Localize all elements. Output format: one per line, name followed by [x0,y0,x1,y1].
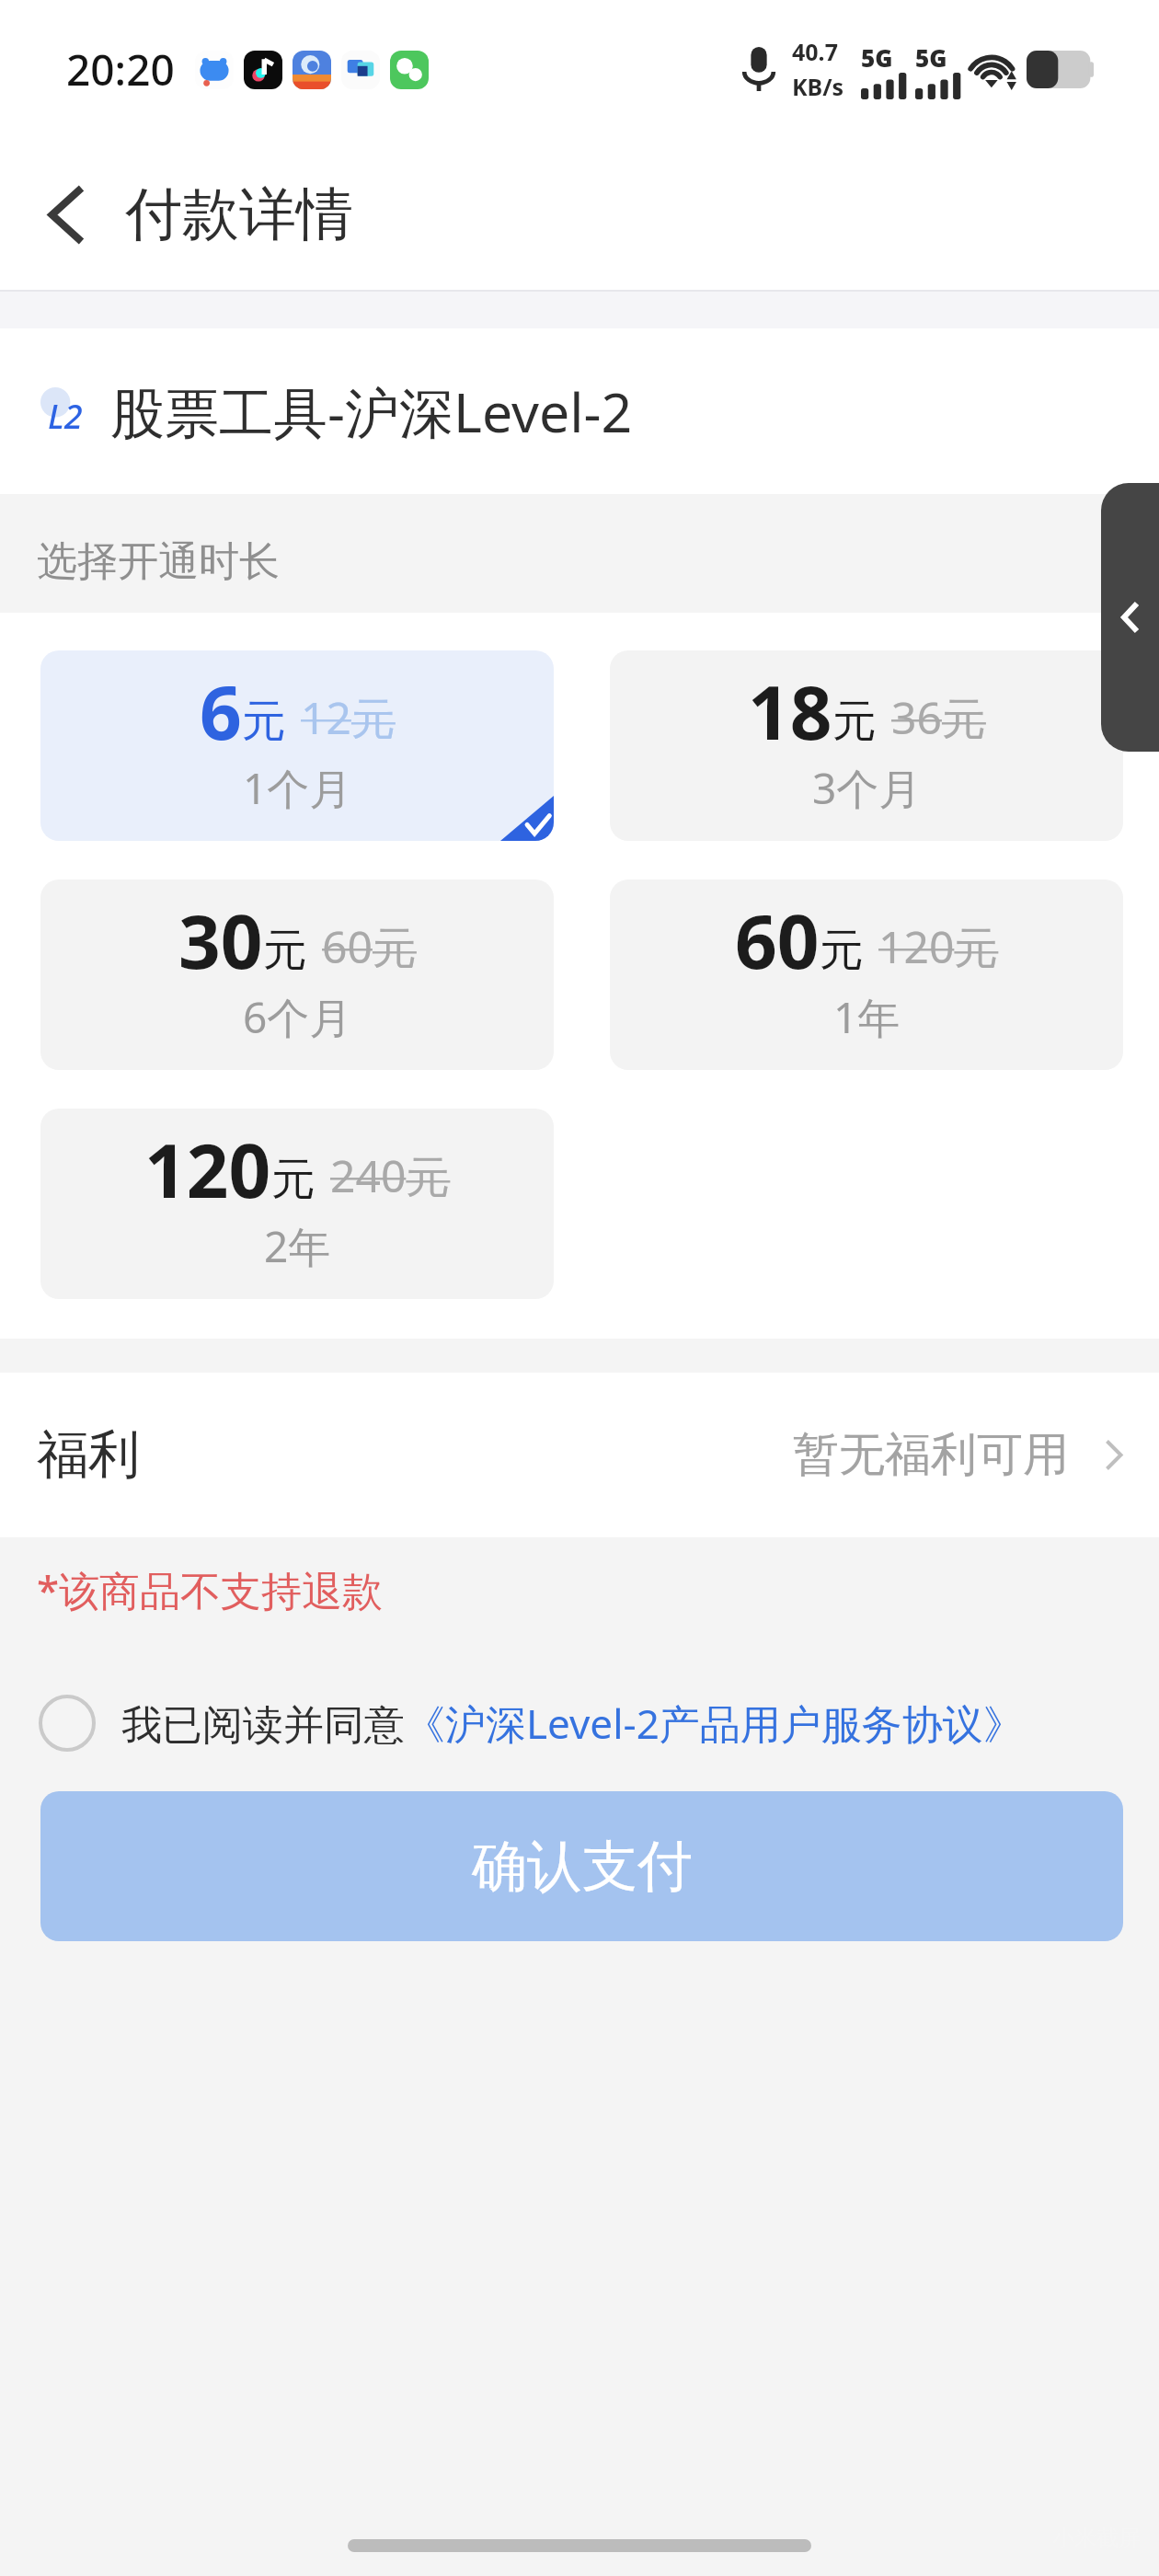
staticText: 20:20 [66,40,175,98]
staticText: 1个月 [243,759,352,817]
staticText: 元 [271,1152,316,1207]
button[interactable]: 120 [40,1109,554,1299]
staticText: KB/s [792,71,844,102]
button[interactable]: Back [20,168,112,260]
staticText: L2 [48,394,83,439]
staticText: 36元 [891,687,986,748]
staticText: 18 [748,661,832,761]
staticText: 股票工具-沪深Level-2 [110,374,633,449]
staticText: 5G [915,41,947,74]
button[interactable]: Expand side panel [1101,483,1159,752]
staticText: *该商品不支持退款 [37,1562,384,1617]
staticText: 6 [200,661,242,761]
staticText: 3个月 [812,759,922,817]
staticText: 元 [242,694,286,749]
staticText: 30 [178,890,263,990]
staticText: 选择开通时长 [37,536,280,587]
staticText: 元 [832,694,877,749]
staticText: 120 [144,1119,271,1219]
staticText: 福利 [37,1422,140,1488]
staticText: 40.7 [792,36,838,67]
button[interactable]: 福利 [0,1373,1159,1537]
button[interactable]: 30 [40,880,554,1070]
staticText: 60元 [322,916,417,977]
staticText: 元 [263,923,307,978]
staticText: 6个月 [243,988,352,1046]
button[interactable]: 6 [40,650,554,841]
staticText: 暂无福利可用 [793,1426,1069,1484]
staticText: 付款详情 [125,178,353,250]
staticText: 2年 [264,1217,331,1275]
button[interactable]: 60 [610,880,1123,1070]
staticText: 240元 [330,1145,451,1206]
button[interactable]: 18 [610,650,1123,841]
staticText: 120元 [878,916,999,977]
staticText: 1年 [833,988,901,1046]
button[interactable]: L2 [0,328,1159,494]
staticText: 元 [820,923,864,978]
button[interactable]: 同意协议复选框 [39,1695,96,1752]
button[interactable]: 我已阅读并同意《沪深Level-2产品用户服务协议》 [121,1696,1024,1751]
staticText: 5G [861,41,893,74]
button[interactable]: 确认支付 [40,1791,1123,1941]
staticText: 60 [735,890,820,990]
staticText: 12元 [301,687,396,748]
staticText: 确认支付 [472,1832,693,1902]
